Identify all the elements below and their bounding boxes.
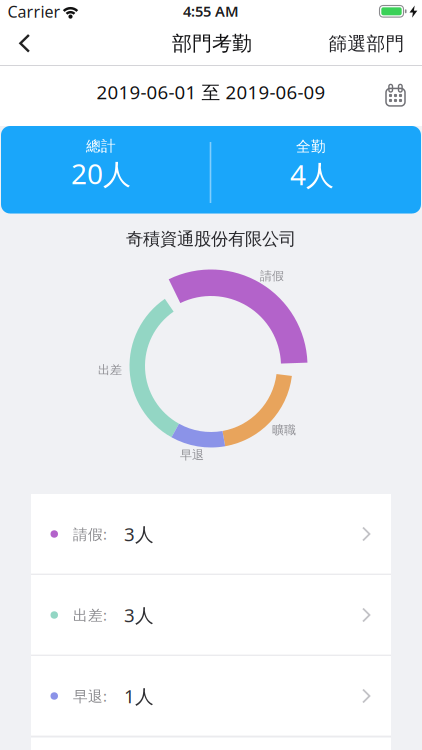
- staticText: 3人: [124, 522, 154, 546]
- staticText: 2019-06-01 至 2019-06-09: [96, 80, 325, 104]
- staticText: 3人: [124, 603, 154, 627]
- button[interactable]: Back: [11, 28, 38, 59]
- staticText: Carrier: [7, 1, 60, 22]
- staticText: 出差: [98, 363, 122, 377]
- staticText: 早退:: [73, 686, 107, 706]
- staticText: 總計: [86, 137, 116, 155]
- staticText: 全勤: [296, 137, 326, 155]
- button[interactable]: 早退:: [31, 656, 391, 737]
- staticText: 篩選部門: [328, 32, 404, 55]
- staticText: 早退: [180, 448, 204, 462]
- staticText: 請假:: [73, 524, 107, 544]
- button[interactable]: 選擇日期: [385, 84, 406, 106]
- staticText: 出差:: [73, 605, 107, 625]
- staticText: 4人: [290, 156, 334, 193]
- staticText: 20人: [71, 155, 131, 192]
- button[interactable]: 出差:: [31, 575, 391, 656]
- staticText: 曠職: [272, 423, 296, 437]
- staticText: 請假: [260, 269, 284, 283]
- staticText: 4:55 AM: [183, 1, 239, 21]
- button[interactable]: 篩選部門: [328, 26, 404, 61]
- staticText: 1人: [124, 684, 154, 708]
- staticText: 奇積資通股份有限公司: [126, 228, 296, 250]
- button[interactable]: 請假:: [31, 494, 391, 575]
- staticText: 部門考勤: [172, 31, 252, 56]
